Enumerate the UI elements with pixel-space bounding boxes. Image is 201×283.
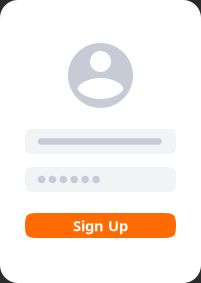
button[interactable]: Username [25,129,176,154]
button[interactable]: Sign Up [25,213,176,238]
staticText: Sign Up [73,216,128,235]
button[interactable]: Password [25,167,176,192]
